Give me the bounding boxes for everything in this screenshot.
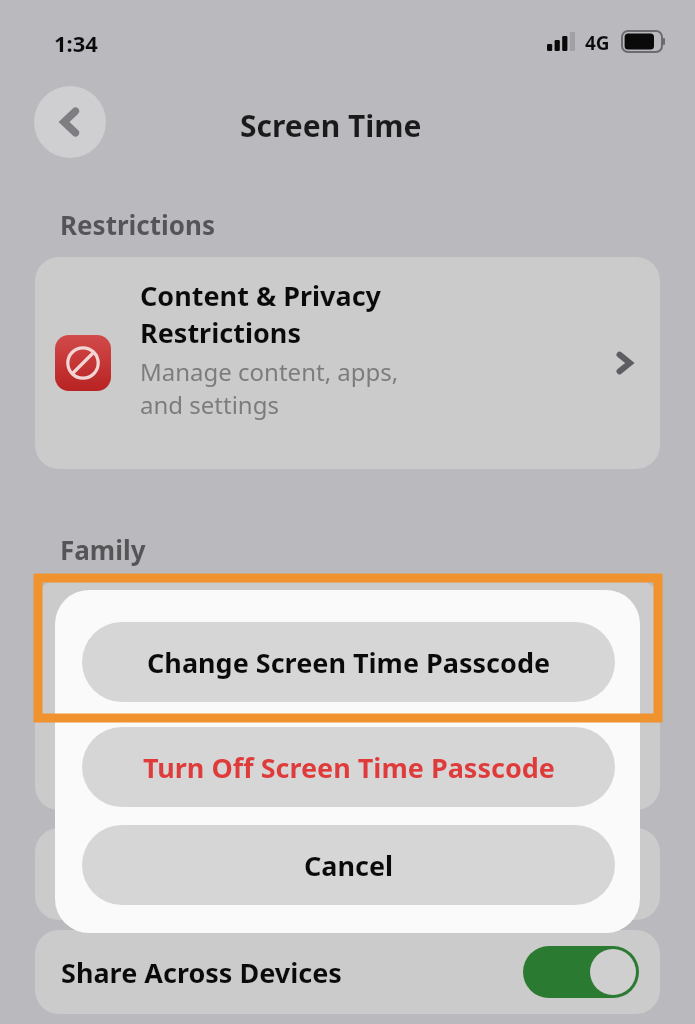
staticText: Screen Time [240, 105, 422, 146]
staticText: Cancel [304, 847, 394, 884]
button[interactable]: Cancel [82, 825, 615, 905]
button[interactable]: Change Screen Time Passcode [82, 622, 615, 702]
staticText: 1:34 [54, 28, 98, 58]
button[interactable]: Share Across Devices [35, 930, 660, 1014]
staticText: Manage content, apps, [140, 355, 399, 388]
staticText: Change Screen Time Passcode [147, 644, 551, 681]
staticText: 4G [585, 30, 610, 56]
staticText: and settings [140, 388, 279, 421]
staticText: Restrictions [60, 207, 215, 242]
button[interactable]: Content & Privacy [35, 257, 660, 469]
staticText: Share Across Devices [61, 954, 342, 991]
staticText: Restrictions [140, 314, 301, 351]
staticText: Family [60, 532, 146, 567]
staticText: Content & Privacy [140, 277, 382, 314]
staticText: Turn Off Screen Time Passcode [143, 749, 555, 786]
button[interactable]: Turn Off Screen Time Passcode [82, 727, 615, 807]
button[interactable]: Back [34, 86, 106, 158]
